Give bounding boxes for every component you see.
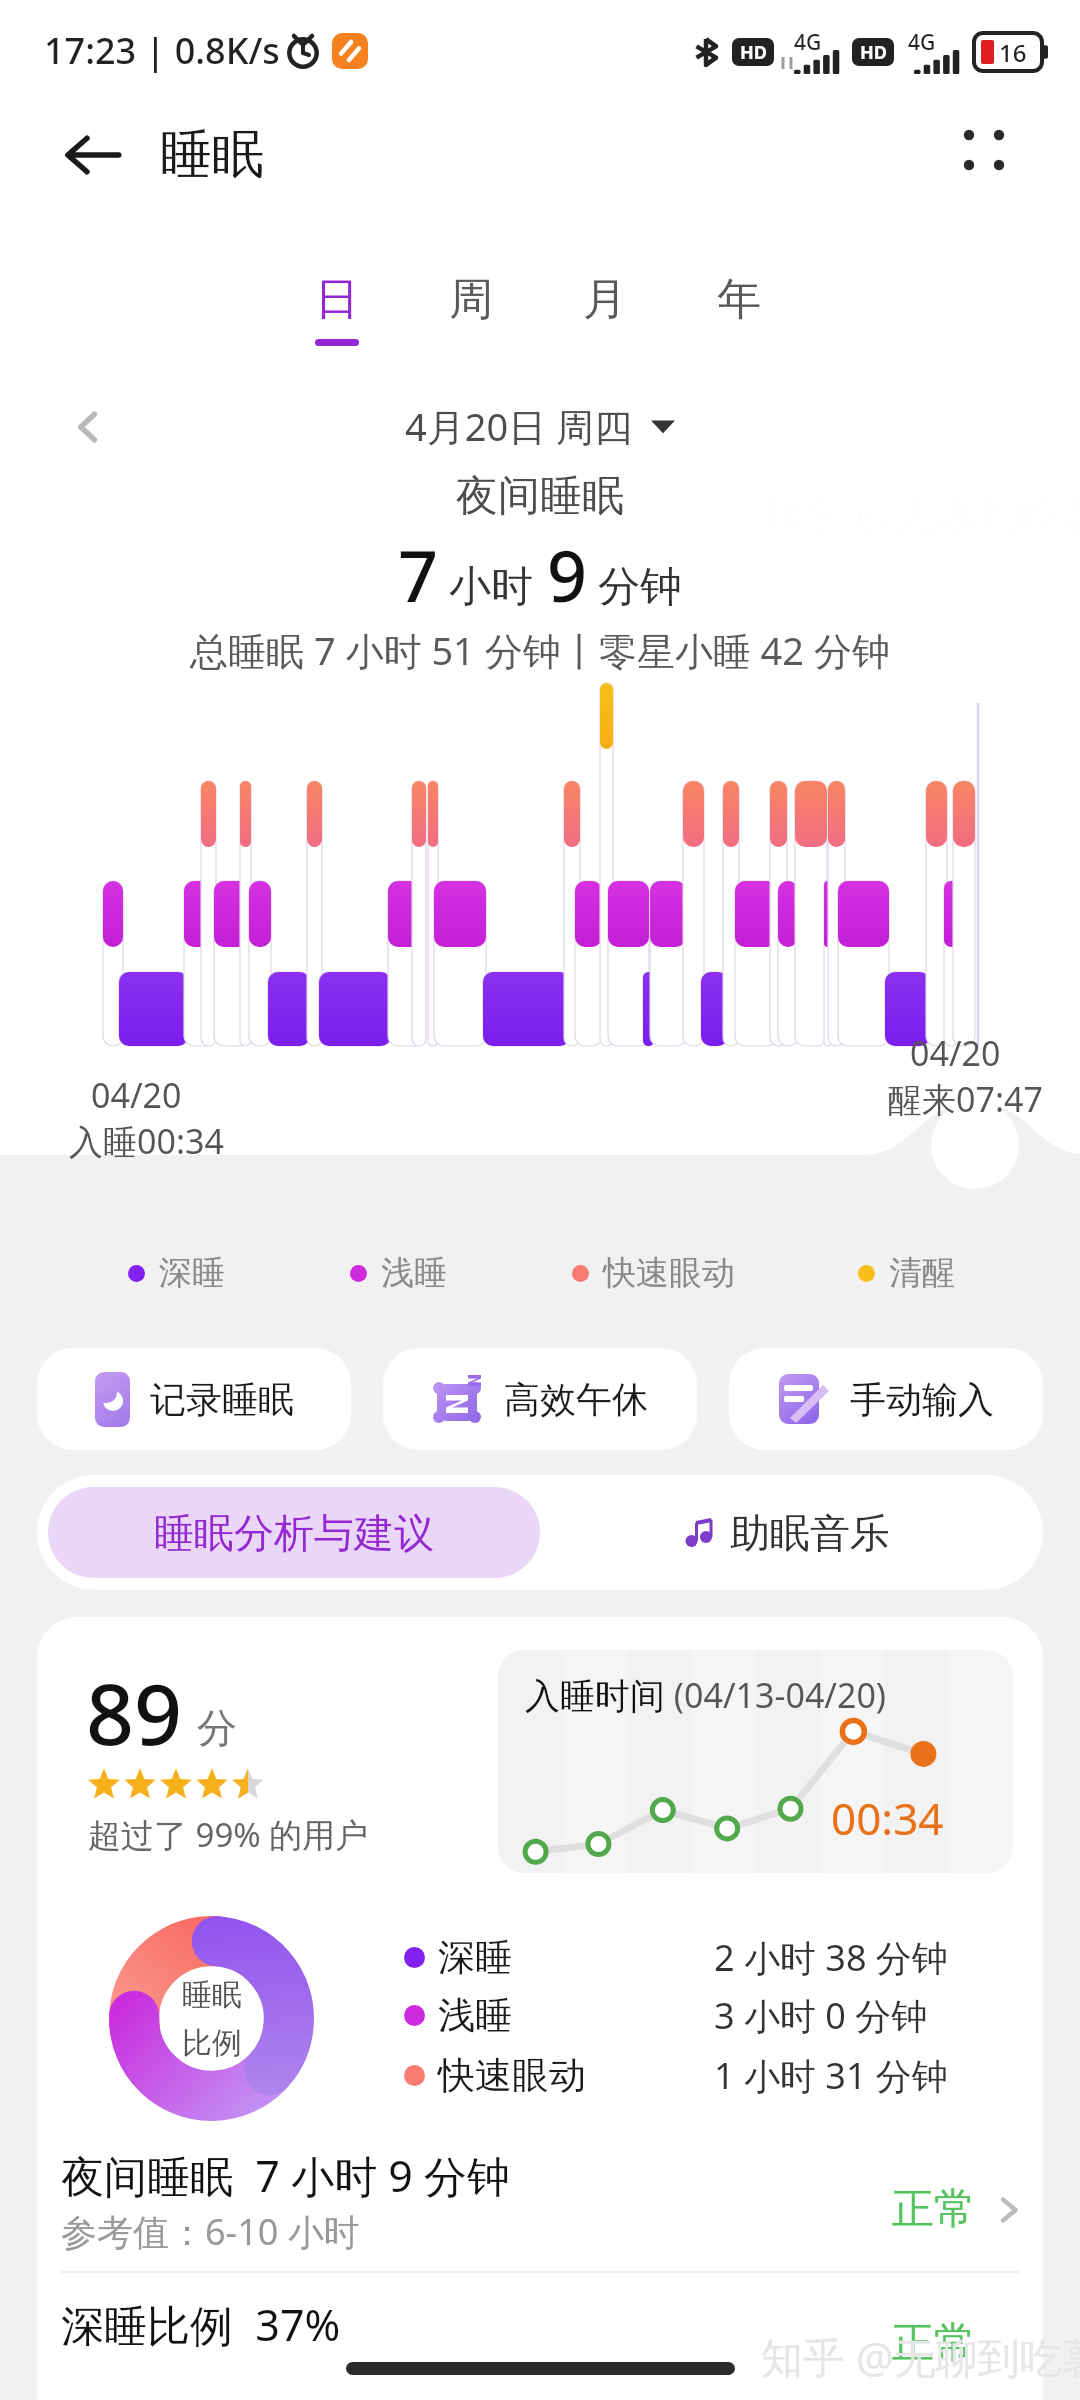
staticText: 日 <box>315 272 359 327</box>
staticText: 醒来07:47 <box>888 1076 1043 1122</box>
staticText: 睡眠分析与建议 <box>154 1508 434 1558</box>
staticText: 助眠音乐 <box>730 1508 890 1558</box>
staticText: 入睡00:34 <box>69 1118 224 1164</box>
button[interactable]: 睡眠分析与建议 <box>48 1487 540 1578</box>
button[interactable]: 周 <box>426 272 516 362</box>
staticText: 浅睡 <box>381 1252 447 1294</box>
staticText: 04/20 <box>91 1072 182 1118</box>
button[interactable]: 高效午休 <box>383 1348 697 1450</box>
staticText: 快速眼动 <box>603 1252 735 1294</box>
staticText: 分 <box>197 1703 237 1753</box>
staticText: 比例 <box>182 2024 242 2062</box>
staticText: 7 <box>398 527 439 622</box>
staticText: 4G <box>794 28 822 57</box>
staticText: 正常 <box>892 2317 976 2370</box>
staticText: 睡眠 <box>182 1976 242 2014</box>
staticText: 9 <box>547 527 588 622</box>
staticText: 手动输入 <box>850 1377 994 1422</box>
staticText: 总睡眠 7 小时 51 分钟丨零星小睡 42 分钟 <box>190 624 890 676</box>
staticText: 4月20日 周四 <box>405 400 633 452</box>
button[interactable]: 深睡比例 37% <box>37 2281 1043 2400</box>
staticText: 参考值：6-10 小时 <box>61 2207 360 2256</box>
staticText: 年 <box>717 272 761 327</box>
staticText: HD <box>860 40 887 65</box>
staticText: 3 小时 0 分钟 <box>714 1991 928 2040</box>
staticText: 1 小时 31 分钟 <box>714 2051 948 2100</box>
button[interactable]: 4月20日 周四 <box>397 392 683 460</box>
staticText: 浅睡 <box>438 1992 512 2039</box>
staticText: 17:23 | 0.8K/s <box>44 26 280 75</box>
staticText: 深睡 <box>159 1252 225 1294</box>
staticText: 入睡时间 <box>525 1674 665 1718</box>
staticText: 89 <box>86 1655 183 1769</box>
staticText: (04/13-04/20) <box>665 1672 887 1718</box>
button[interactable]: Back <box>53 115 133 195</box>
staticText: 04/20 <box>910 1030 1001 1076</box>
staticText: 月 <box>583 272 627 327</box>
button[interactable]: 日 <box>292 272 382 362</box>
staticText: 超过了 99% 的用户 <box>88 1812 369 1857</box>
button[interactable]: More options <box>944 110 1024 190</box>
staticText: 2 小时 38 分钟 <box>714 1933 948 1982</box>
staticText: 记录睡眠 <box>150 1377 294 1422</box>
staticText: 夜间睡眠 <box>456 470 624 523</box>
staticText: 夜间睡眠 7 小时 9 分钟 <box>61 2146 511 2205</box>
staticText: 睡眠 <box>160 122 264 188</box>
button[interactable]: 夜间睡眠 7 小时 9 分钟 <box>37 2137 1043 2257</box>
staticText: 快速眼动 <box>438 2052 586 2099</box>
button[interactable]: Previous day <box>56 395 120 459</box>
staticText: 知乎 @无聊到吃薯片 <box>761 2328 1080 2385</box>
staticText: 分钟 <box>598 561 682 614</box>
button[interactable]: 月 <box>560 272 650 362</box>
staticText: 4G <box>908 28 936 57</box>
staticText: 清醒 <box>889 1252 955 1294</box>
staticText: 高效午休 <box>504 1377 648 1422</box>
staticText: 正常 <box>892 2183 976 2236</box>
button[interactable]: 助眠音乐 <box>544 1475 1030 1590</box>
button[interactable]: 记录睡眠 <box>37 1348 351 1450</box>
staticText: HD <box>740 40 767 65</box>
staticText: 深睡 <box>438 1934 512 1981</box>
button[interactable]: 手动输入 <box>729 1348 1043 1450</box>
staticText: 16 <box>999 36 1027 69</box>
staticText: 周 <box>449 272 493 327</box>
staticText: 深睡比例 37% <box>61 2295 341 2354</box>
staticText: 小时 <box>449 561 533 614</box>
staticText: 00:34 <box>831 1788 944 1848</box>
button[interactable]: 年 <box>694 272 784 362</box>
